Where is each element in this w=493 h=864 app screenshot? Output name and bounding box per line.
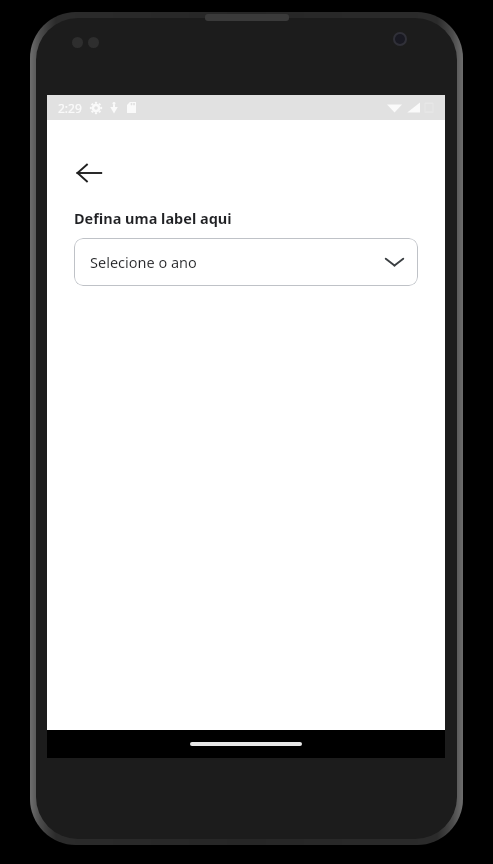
button[interactable]: Selecione o ano	[74, 238, 418, 286]
staticText: Defina uma label aqui	[74, 208, 232, 228]
staticText: 2:29	[58, 100, 82, 116]
button[interactable]: Back	[62, 146, 116, 200]
staticText: Selecione o ano	[90, 252, 385, 272]
